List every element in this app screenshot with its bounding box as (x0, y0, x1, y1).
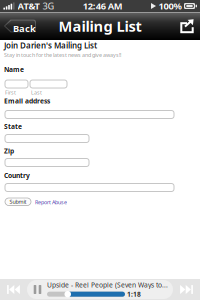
button[interactable]: Next track (173, 279, 200, 300)
staticText: Join Darien's Mailing List (4, 40, 97, 51)
staticText: Upside - Reel People (Seven Ways to... (47, 280, 168, 289)
staticText: State (4, 122, 22, 131)
staticText: 1:18 (127, 290, 141, 299)
button[interactable]: Submit (5, 198, 31, 205)
staticText: Report Abuse (35, 199, 67, 206)
staticText: Last (31, 89, 42, 96)
button[interactable]: Previous track (0, 279, 27, 300)
button[interactable]: Share (177, 17, 197, 35)
staticText: Country (4, 171, 30, 180)
staticText: 12:46 AM (83, 0, 123, 12)
staticText: Email address (4, 96, 50, 105)
staticText: Submit (9, 198, 26, 205)
button[interactable]: Pause (28, 280, 47, 299)
staticText: Back (13, 22, 36, 35)
button[interactable]: Report Abuse (35, 199, 67, 206)
button[interactable]: Back (3, 19, 36, 33)
staticText: First (5, 89, 16, 96)
staticText: Stay in touch for the latest news and gi… (4, 51, 121, 59)
staticText: AT&T (17, 0, 39, 12)
staticText: 100% (158, 0, 181, 12)
staticText: Mailing List (58, 16, 141, 36)
staticText: Name (4, 65, 24, 74)
staticText: 3G (42, 0, 54, 12)
staticText: Zip (4, 146, 14, 155)
